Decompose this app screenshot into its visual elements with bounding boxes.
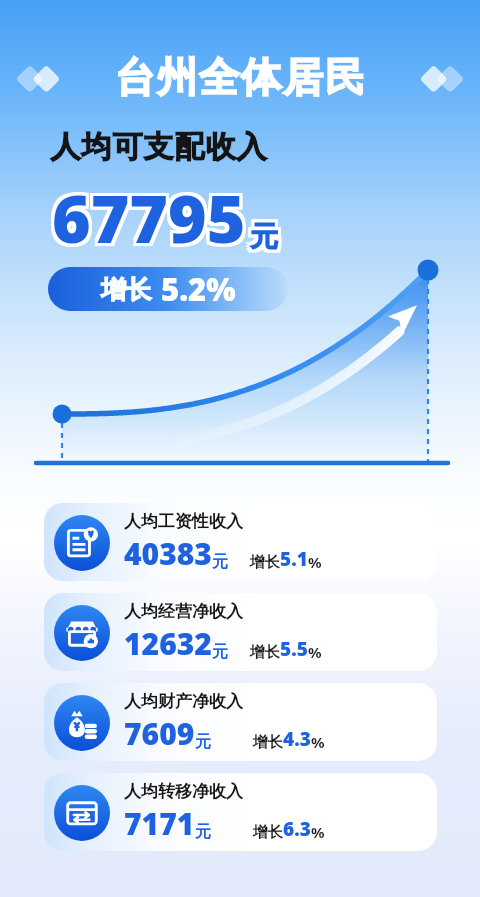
staticText: 6.3 [283, 816, 311, 842]
staticText: 元 [195, 732, 211, 752]
staticText: 67795 [52, 172, 246, 262]
button[interactable]: 人均工资性收入 [44, 503, 437, 581]
staticText: 7171 [124, 803, 195, 844]
staticText: 5.5 [280, 636, 308, 662]
staticText: 元 [250, 222, 278, 257]
staticText: 67795 [52, 175, 246, 265]
staticText: 12632 [124, 623, 212, 664]
staticText: 人均转移净收入 [124, 781, 243, 802]
staticText: % [308, 642, 322, 662]
staticText: 增长 [253, 733, 283, 752]
staticText: 元 [247, 216, 275, 251]
staticText: 人均工资性收入 [124, 511, 243, 532]
staticText: 5.2% [161, 268, 236, 310]
button[interactable]: 人均经营净收入 [44, 593, 437, 671]
staticText: 元 [250, 216, 278, 251]
staticText: 40383 [124, 533, 212, 574]
staticText: 增长 [250, 643, 280, 662]
staticText: 67795 [55, 172, 249, 262]
staticText: 元 [253, 219, 281, 254]
button[interactable]: 人均财产净收入 [44, 683, 437, 761]
staticText: 增长 [253, 823, 283, 842]
staticText: 元 [253, 222, 281, 257]
staticText: 4.3 [283, 726, 311, 752]
staticText: 元 [253, 216, 281, 251]
staticText: 人均可支配收入 [50, 128, 267, 166]
staticText: % [311, 822, 325, 842]
staticText: 67795 [52, 169, 246, 259]
staticText: % [308, 552, 322, 572]
staticText: 元 [195, 822, 211, 842]
button[interactable]: 人均转移净收入 [44, 773, 437, 851]
staticText: 增长 [101, 274, 151, 305]
staticText: 人均经营净收入 [124, 601, 243, 622]
staticText: 67795 [55, 169, 249, 259]
staticText: 元 [212, 642, 228, 662]
staticText: % [311, 732, 325, 752]
staticText: 5.1 [280, 546, 308, 572]
staticText: 台州全体居民 [116, 55, 368, 105]
staticText: 67795 [49, 169, 243, 259]
staticText: 人均财产净收入 [124, 691, 243, 712]
staticText: 67795 [55, 175, 249, 265]
button[interactable]: 增长 [48, 267, 288, 311]
staticText: 元 [247, 222, 275, 257]
staticText: 元 [247, 219, 275, 254]
staticText: 7609 [124, 713, 195, 754]
staticText: 67795 [49, 175, 243, 265]
staticText: 台州全体居民 [114, 52, 366, 102]
staticText: 67795 [49, 172, 243, 262]
staticText: 元 [250, 219, 278, 254]
staticText: 元 [212, 552, 228, 572]
staticText: 增长 [250, 553, 280, 572]
